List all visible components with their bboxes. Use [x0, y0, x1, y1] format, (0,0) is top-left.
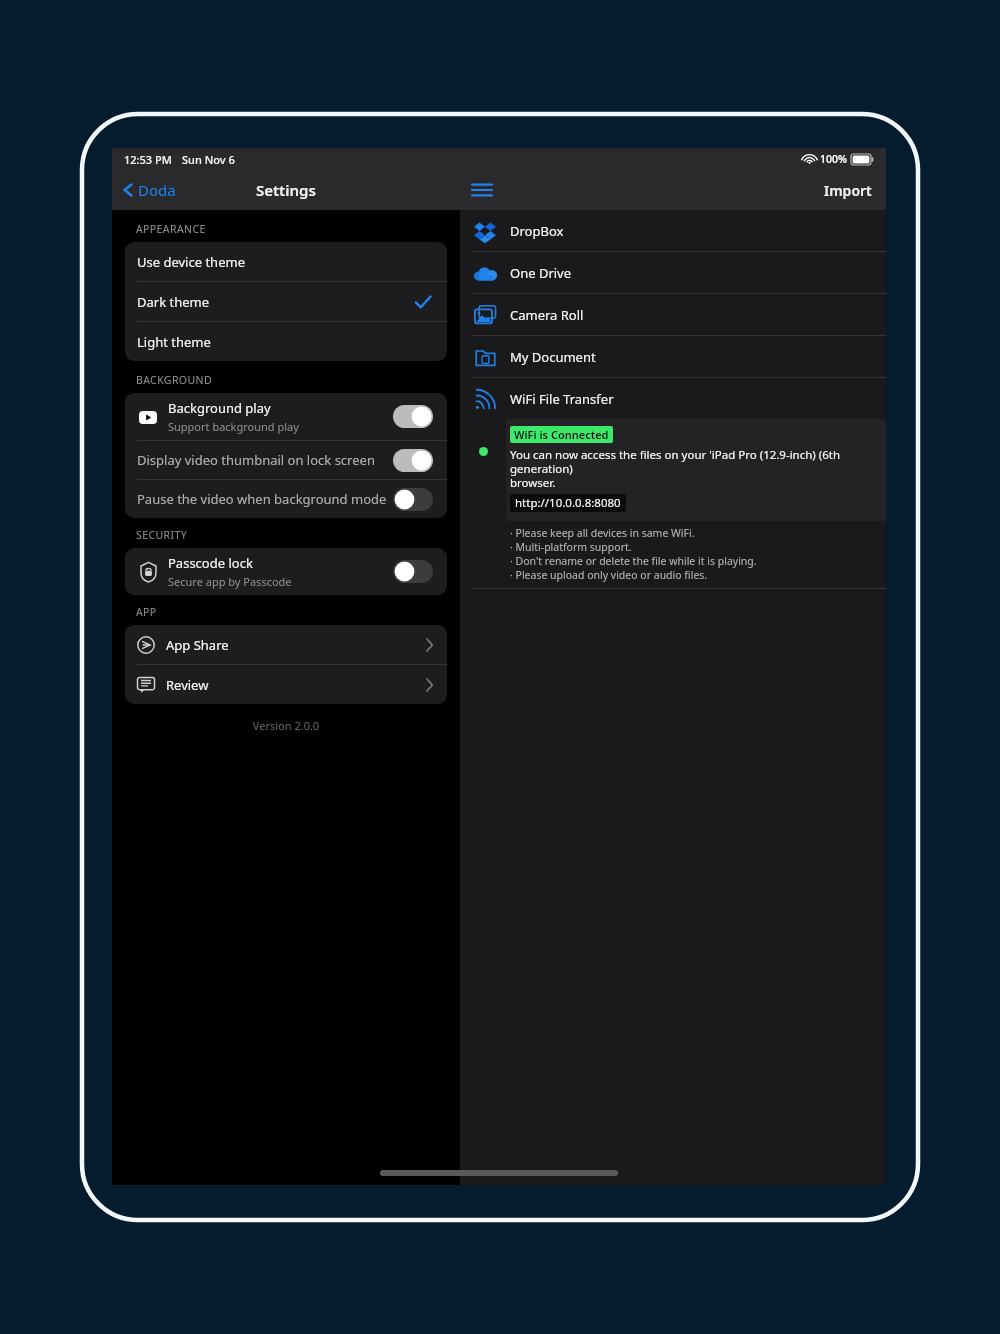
- staticText: Secure app by Passcode: [168, 574, 292, 589]
- staticText: Sun Nov 6: [182, 152, 235, 167]
- button[interactable]: Pause the video when background mode: [125, 480, 447, 518]
- staticText: My Document: [510, 348, 596, 366]
- staticText: Passcode lock: [168, 554, 253, 572]
- staticText: One Drive: [510, 264, 572, 282]
- button[interactable]: Background play: [125, 393, 447, 440]
- staticText: WiFi File Transfer: [510, 390, 614, 408]
- staticText: http://10.0.0.8:8080: [515, 495, 621, 511]
- staticText: Light theme: [137, 333, 211, 351]
- staticText: WiFi is Connected: [514, 427, 609, 442]
- staticText: Use device theme: [137, 253, 245, 271]
- staticText: APP: [136, 605, 157, 619]
- button[interactable]: Light theme: [125, 322, 447, 361]
- staticText: Display video thumbnail on lock screen: [137, 451, 375, 469]
- staticText: Camera Roll: [510, 306, 584, 324]
- button[interactable]: Menu: [460, 173, 504, 207]
- staticText: Pause the video when background mode: [137, 490, 387, 508]
- staticText: · Please keep all devices in same WiFi.: [510, 526, 695, 540]
- staticText: DropBox: [510, 222, 564, 240]
- button[interactable]: App Share: [125, 625, 447, 664]
- staticText: · Please upload only video or audio file…: [510, 568, 708, 582]
- staticText: BACKGROUND: [136, 373, 212, 387]
- button[interactable]: Camera Roll: [460, 294, 886, 335]
- staticText: Settings: [256, 180, 316, 200]
- button[interactable]: WiFi File Transfer: [460, 378, 886, 419]
- staticText: 100%: [820, 152, 847, 166]
- button[interactable]: Use device theme: [125, 242, 447, 281]
- staticText: App Share: [166, 636, 426, 654]
- staticText: · Multi-platform support.: [510, 540, 632, 554]
- staticText: Background play: [168, 399, 271, 417]
- button[interactable]: Display video thumbnail on lock screen: [125, 441, 447, 479]
- staticText: Version 2.0.0: [112, 718, 460, 733]
- staticText: Review: [166, 676, 426, 694]
- button[interactable]: Review: [125, 665, 447, 704]
- staticText: Import: [824, 181, 872, 200]
- staticText: Doda: [138, 180, 176, 200]
- staticText: SECURITY: [136, 528, 187, 542]
- button[interactable]: One Drive: [460, 252, 886, 293]
- staticText: You can now access the files on your 'iP…: [510, 447, 878, 490]
- button[interactable]: Passcode lock: [125, 548, 447, 595]
- staticText: APPEARANCE: [136, 222, 206, 236]
- button[interactable]: DropBox: [460, 210, 886, 251]
- button[interactable]: Doda: [112, 174, 186, 206]
- button[interactable]: Dark theme: [125, 282, 447, 321]
- staticText: Support background play: [168, 419, 299, 434]
- staticText: Dark theme: [137, 293, 210, 311]
- staticText: 12:53 PM: [124, 152, 172, 167]
- staticText: · Don't rename or delete the file while …: [510, 554, 757, 568]
- button[interactable]: My Document: [460, 336, 886, 377]
- button[interactable]: Import: [810, 173, 886, 208]
